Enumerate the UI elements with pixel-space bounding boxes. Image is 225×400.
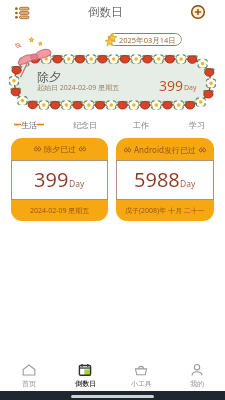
button[interactable]: 学习 <box>169 116 225 134</box>
staticText: Day <box>180 178 196 190</box>
button[interactable]: 倒数日 <box>57 363 113 388</box>
button[interactable]: 工作 <box>113 116 169 134</box>
staticText: 除夕已过 <box>44 144 76 154</box>
button[interactable]: Android发行已过 <box>116 138 214 221</box>
button[interactable]: 纪念日 <box>57 116 113 134</box>
staticText: 倒数日 <box>88 5 123 19</box>
staticText: 倒数日 <box>75 379 96 388</box>
button[interactable]: 首页 <box>0 363 57 388</box>
staticText: 除夕 <box>37 69 61 84</box>
staticText: 戊子(2008)年 十月 二十一 <box>125 206 205 216</box>
staticText: 5988 <box>134 166 180 193</box>
staticText: 首页 <box>22 379 36 388</box>
staticText: 我的 <box>190 379 204 388</box>
staticText: 399 <box>34 166 69 193</box>
staticText: 小工具 <box>131 379 152 388</box>
button[interactable]: 我的 <box>169 363 225 388</box>
button[interactable] <box>14 59 211 105</box>
staticText: 起始日 2024-02-09 星期五 <box>37 83 120 93</box>
staticText: 2025年03月14日 <box>119 35 176 45</box>
staticText: Day <box>184 83 197 93</box>
button[interactable]: List menu <box>11 2 33 24</box>
staticText: Android发行已过 <box>134 144 196 155</box>
button[interactable]: Add countdown <box>187 1 209 23</box>
staticText: 399 <box>159 76 184 95</box>
staticText: 生活 <box>21 120 37 130</box>
button[interactable]: 生活 <box>0 116 57 134</box>
staticText: 2024-02-09 星期五 <box>30 206 90 216</box>
staticText: 工作 <box>133 120 149 130</box>
staticText: 学习 <box>189 120 205 130</box>
staticText: 纪念日 <box>73 120 97 130</box>
staticText: Day <box>69 178 85 190</box>
button[interactable]: 小工具 <box>113 363 169 388</box>
button[interactable]: 除夕已过 <box>11 138 108 221</box>
